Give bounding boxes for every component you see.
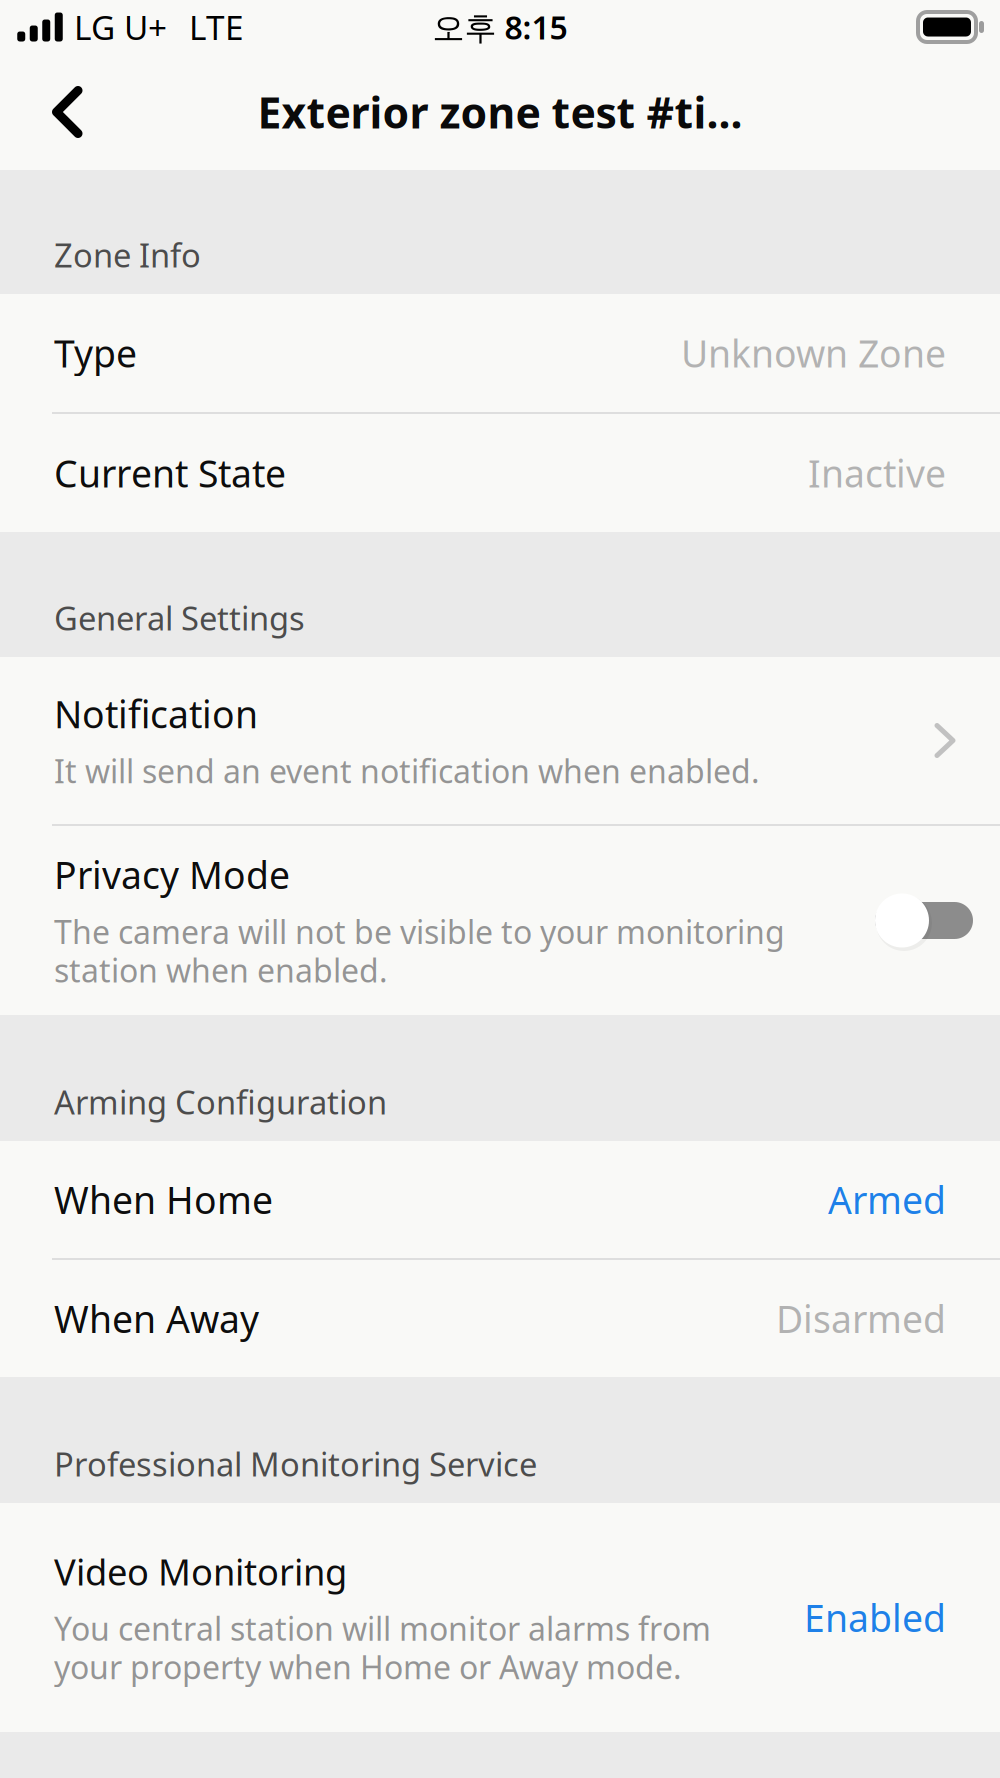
button[interactable]: Type (0, 294, 1000, 412)
staticText: Disarmed (776, 1294, 946, 1343)
staticText: Enabled (804, 1593, 946, 1642)
staticText: Current State (54, 448, 286, 498)
staticText: Unknown Zone (681, 328, 946, 378)
button[interactable]: When Away (0, 1260, 1000, 1377)
staticText: You central station will monitor alarms … (54, 1607, 711, 1688)
staticText: LTE (189, 5, 244, 49)
staticText: Inactive (808, 448, 946, 498)
staticText: Type (54, 328, 137, 378)
staticText: Armed (828, 1175, 946, 1224)
button[interactable]: Privacy Mode (875, 891, 973, 949)
staticText: The camera will not be visible to your m… (54, 910, 785, 991)
staticText: Exterior zone test #ti... (257, 84, 742, 140)
button[interactable]: Back (0, 54, 121, 170)
staticText: Privacy Mode (54, 850, 290, 899)
staticText: General Settings (54, 595, 305, 640)
button[interactable]: Notification (0, 657, 1000, 824)
button[interactable]: When Home (0, 1141, 1000, 1258)
staticText: Notification (54, 689, 258, 739)
staticText: Professional Monitoring Service (54, 1441, 537, 1486)
staticText: LG U+ (74, 5, 167, 49)
staticText: When Home (54, 1175, 273, 1224)
button[interactable]: Current State (0, 414, 1000, 532)
staticText: Zone Info (54, 232, 201, 277)
staticText: 오후 8:15 (432, 6, 567, 48)
button[interactable]: Video Monitoring (0, 1503, 1000, 1732)
staticText: Arming Configuration (54, 1079, 387, 1124)
staticText: When Away (54, 1294, 259, 1343)
staticText: Video Monitoring (54, 1547, 347, 1596)
staticText: It will send an event notification when … (54, 749, 760, 792)
